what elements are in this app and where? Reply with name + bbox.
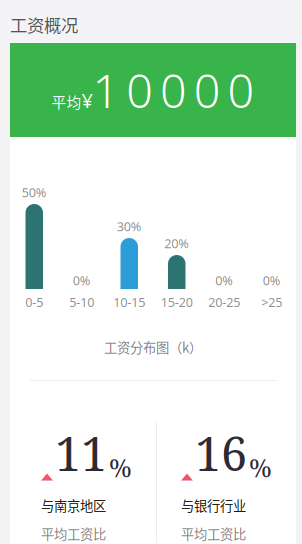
- staticText: 0-5: [25, 293, 43, 311]
- staticText: 工资分布图（k）: [104, 337, 202, 357]
- staticText: 与银行行业: [181, 496, 246, 515]
- staticText: %: [249, 450, 272, 485]
- staticText: 平均工资比: [41, 524, 106, 543]
- staticText: 与南京地区: [41, 496, 106, 515]
- staticText: ¥: [81, 87, 92, 114]
- staticText: 11: [55, 421, 107, 485]
- staticText: 50%: [22, 184, 47, 201]
- staticText: %: [109, 450, 132, 485]
- staticText: 平均: [51, 91, 81, 112]
- staticText: 工资概况: [10, 12, 78, 37]
- staticText: 15-20: [161, 293, 193, 311]
- staticText: >25: [261, 293, 282, 311]
- staticText: 20-25: [208, 293, 240, 311]
- staticText: 10-15: [113, 293, 145, 311]
- staticText: 16: [195, 421, 247, 485]
- staticText: 20%: [164, 235, 189, 252]
- staticText: 10000: [92, 58, 255, 122]
- staticText: 30%: [117, 218, 142, 235]
- staticText: 5-10: [69, 293, 94, 311]
- staticText: 平均工资比: [181, 524, 246, 543]
- staticText: 0%: [73, 272, 91, 289]
- staticText: 0%: [215, 272, 233, 289]
- staticText: 0%: [263, 272, 281, 289]
